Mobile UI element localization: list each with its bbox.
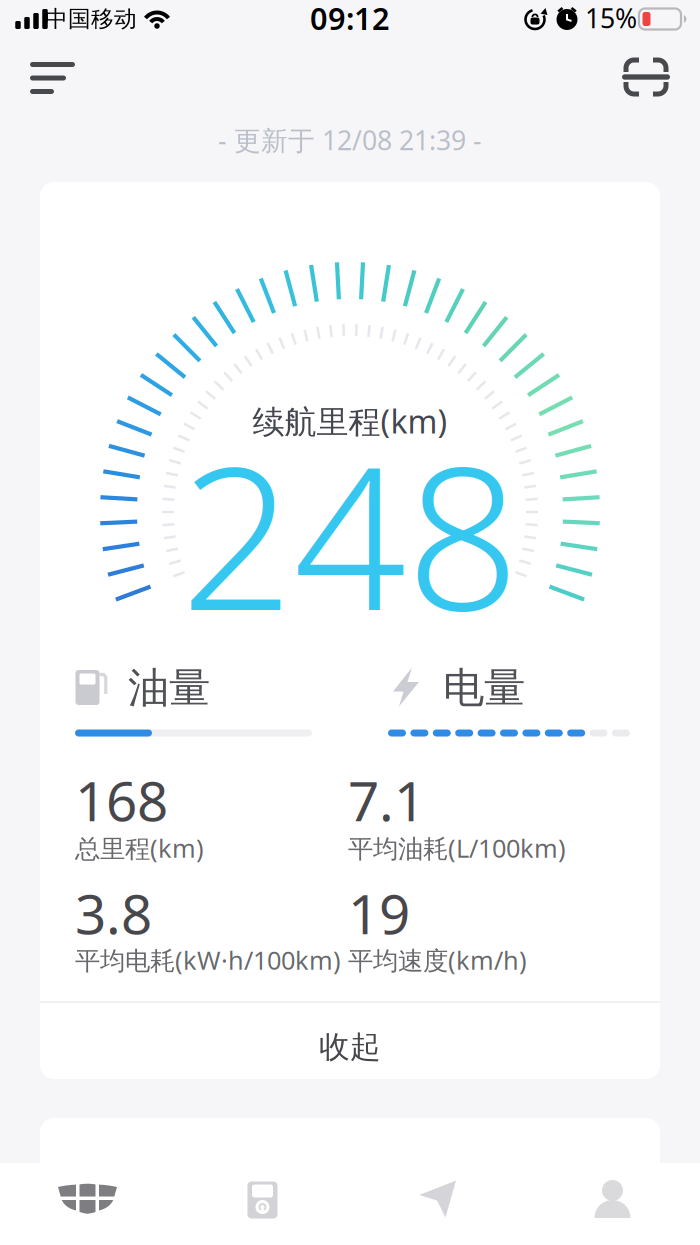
button[interactable] bbox=[525, 1158, 700, 1240]
staticText: 电量 bbox=[443, 663, 525, 713]
staticText: 总里程(km) bbox=[75, 831, 204, 865]
staticText: 平均油耗(L/100km) bbox=[348, 831, 566, 865]
button[interactable] bbox=[623, 57, 669, 97]
staticText: 平均电耗(kW·h/100km) bbox=[75, 943, 341, 977]
staticText: 平均速度(km/h) bbox=[348, 943, 527, 977]
staticText: 168 bbox=[75, 764, 168, 836]
staticText: 09:12 bbox=[310, 0, 390, 38]
button[interactable] bbox=[175, 1159, 350, 1241]
staticText: 7.1 bbox=[348, 764, 425, 836]
staticText: 收起 bbox=[319, 1028, 381, 1066]
staticText: 续航里程(km) bbox=[252, 400, 447, 442]
staticText: 3.8 bbox=[75, 877, 152, 949]
staticText: 油量 bbox=[128, 663, 210, 713]
staticText: 中国移动 bbox=[45, 5, 137, 33]
staticText: - 更新于 12/08 21:39 - bbox=[218, 122, 482, 158]
button[interactable] bbox=[350, 1158, 525, 1240]
button[interactable] bbox=[30, 62, 75, 94]
staticText: 248 bbox=[180, 402, 519, 664]
button[interactable] bbox=[0, 1158, 175, 1240]
staticText: 19 bbox=[348, 877, 410, 949]
button[interactable]: 收起 bbox=[40, 1009, 660, 1084]
staticText: 15% bbox=[585, 0, 637, 36]
